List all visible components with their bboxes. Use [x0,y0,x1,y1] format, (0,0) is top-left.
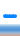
staticText: Continue [3,11,17,21]
